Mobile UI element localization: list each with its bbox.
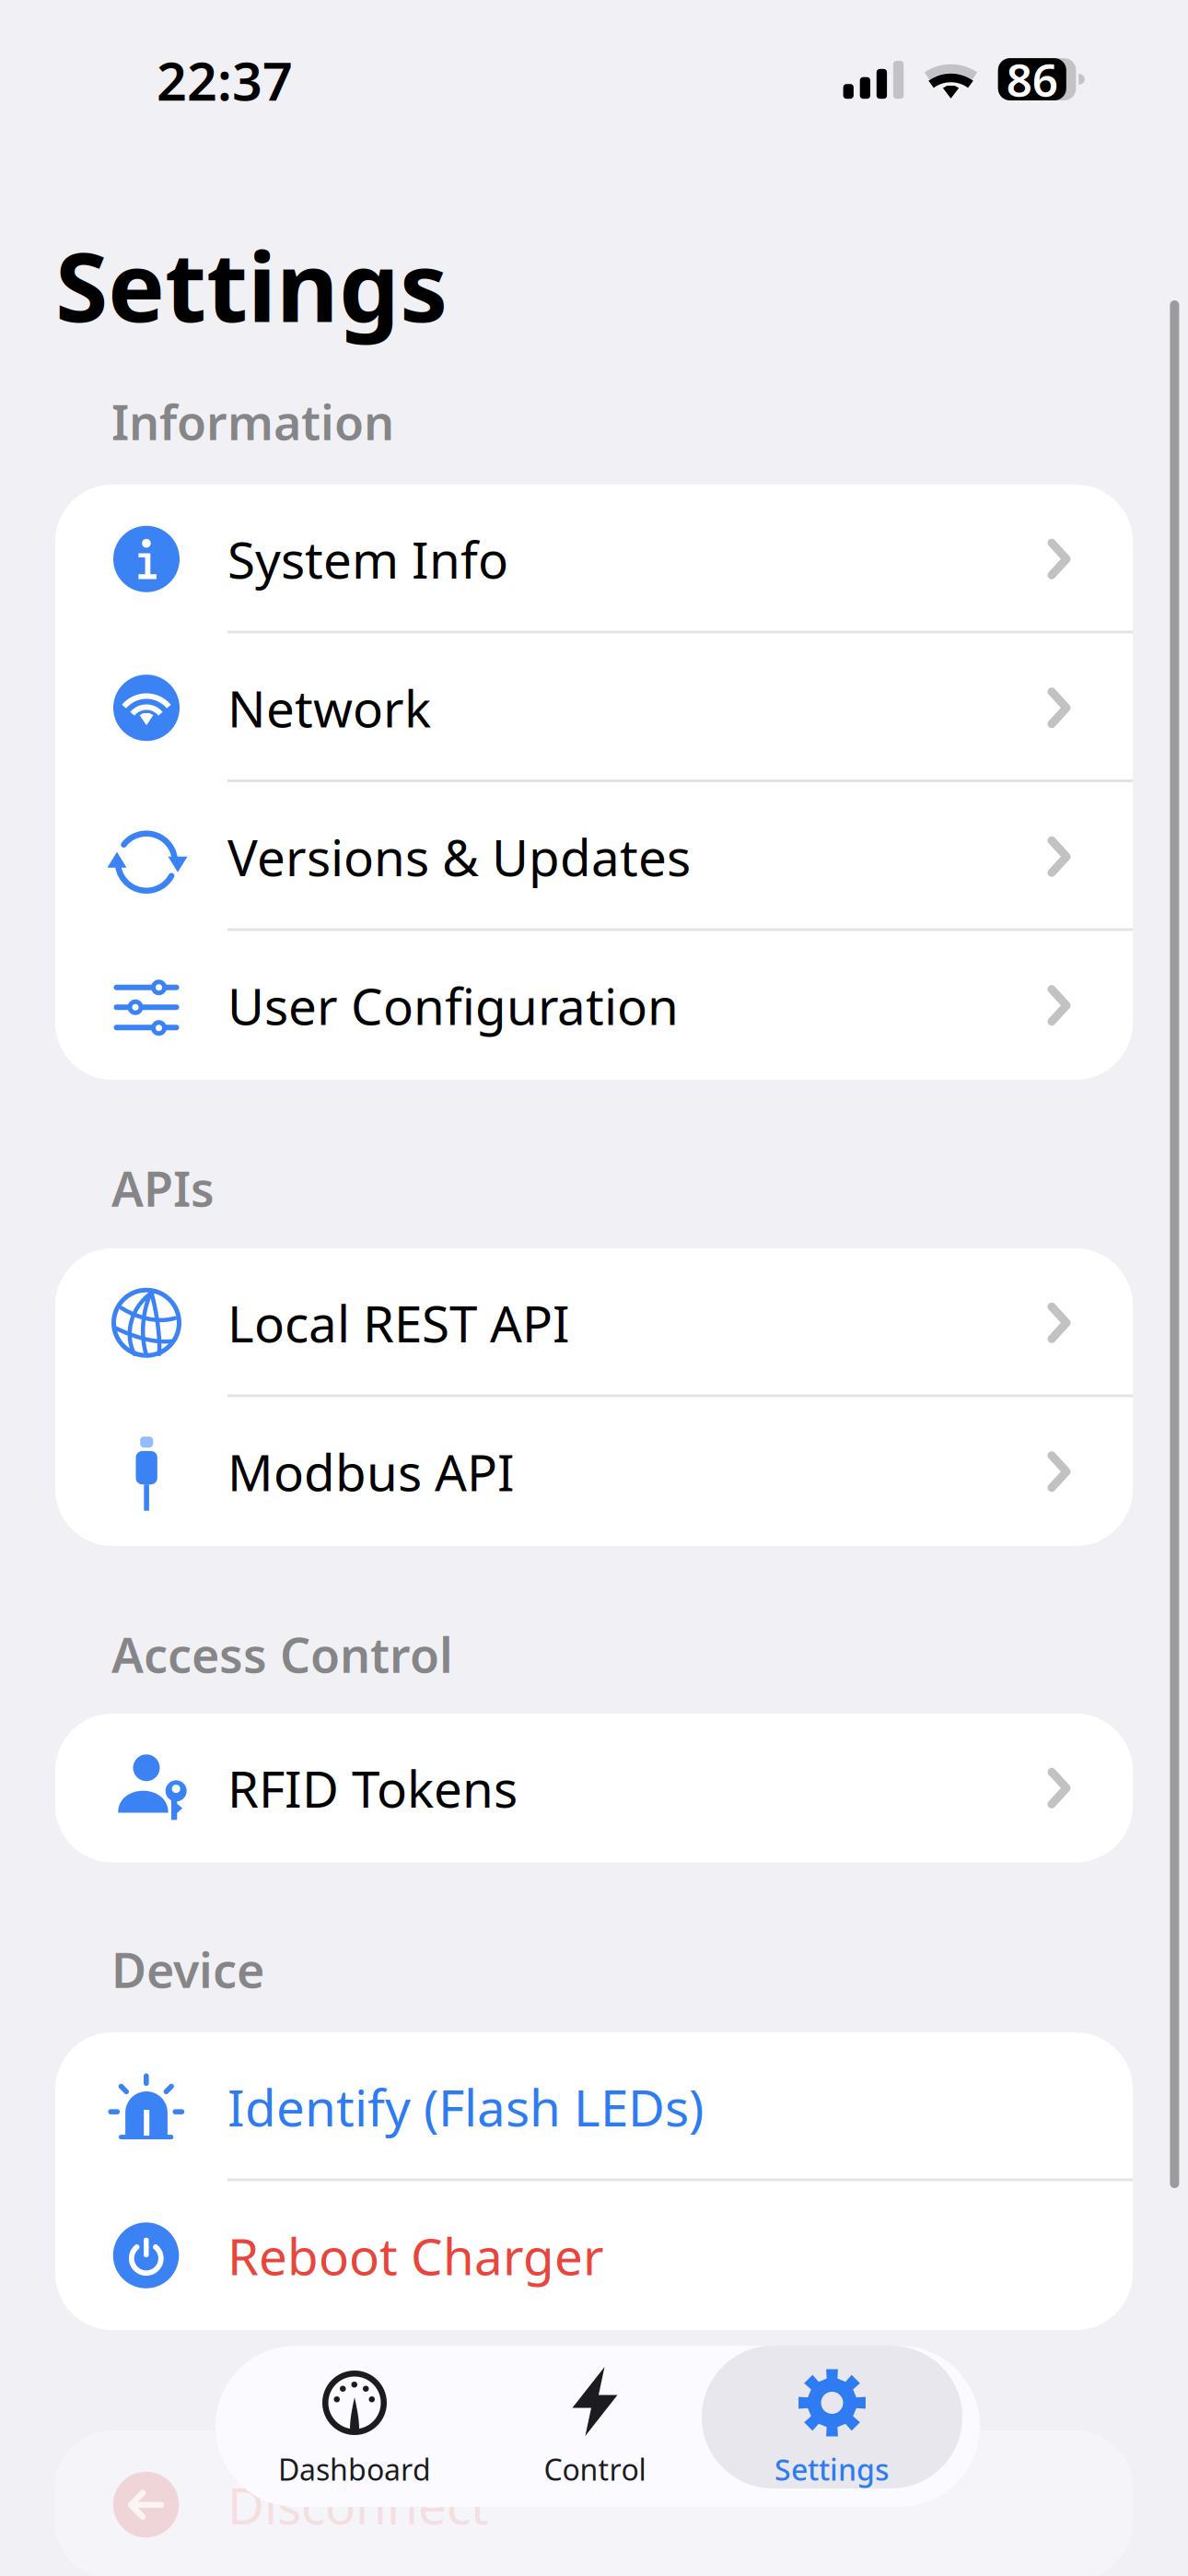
staticText: Local REST API [227,1289,570,1356]
button[interactable]: System Info [55,485,1133,633]
button[interactable]: Reboot Charger [55,2181,1133,2330]
staticText: Modbus API [227,1438,515,1505]
staticText: Versions & Updates [227,823,691,890]
staticText: Control [544,2450,646,2489]
staticText: RFID Tokens [227,1755,518,1822]
button[interactable]: RFID Tokens [55,1714,1133,1862]
staticText: Access Control [111,1622,453,1686]
staticText: Identify (Flash LEDs) [227,2073,704,2140]
button[interactable]: Identify (Flash LEDs) [55,2032,1133,2181]
button[interactable]: Network [55,633,1133,782]
staticText: 86 [1006,49,1058,109]
staticText: Settings [55,221,448,348]
staticText: Device [111,1938,264,2001]
staticText: User Configuration [227,972,679,1039]
staticText: APIs [111,1156,215,1220]
staticText: Information [111,390,394,453]
staticText: Network [227,674,431,741]
button[interactable]: Control [215,2346,476,2488]
staticText: System Info [227,526,508,592]
staticText: Dashboard [278,2450,431,2489]
button[interactable]: Modbus API [55,1397,1133,1546]
button[interactable]: Dashboard [215,2346,476,2488]
button[interactable]: Versions & Updates [55,782,1133,931]
staticText: Disconnect [227,2471,489,2538]
staticText: 22:37 [157,45,293,115]
staticText: Reboot Charger [227,2222,604,2289]
button[interactable]: Local REST API [55,1248,1133,1397]
button[interactable]: Settings [215,2346,476,2488]
staticText: Settings [775,2450,890,2489]
button[interactable]: User Configuration [55,931,1133,1080]
